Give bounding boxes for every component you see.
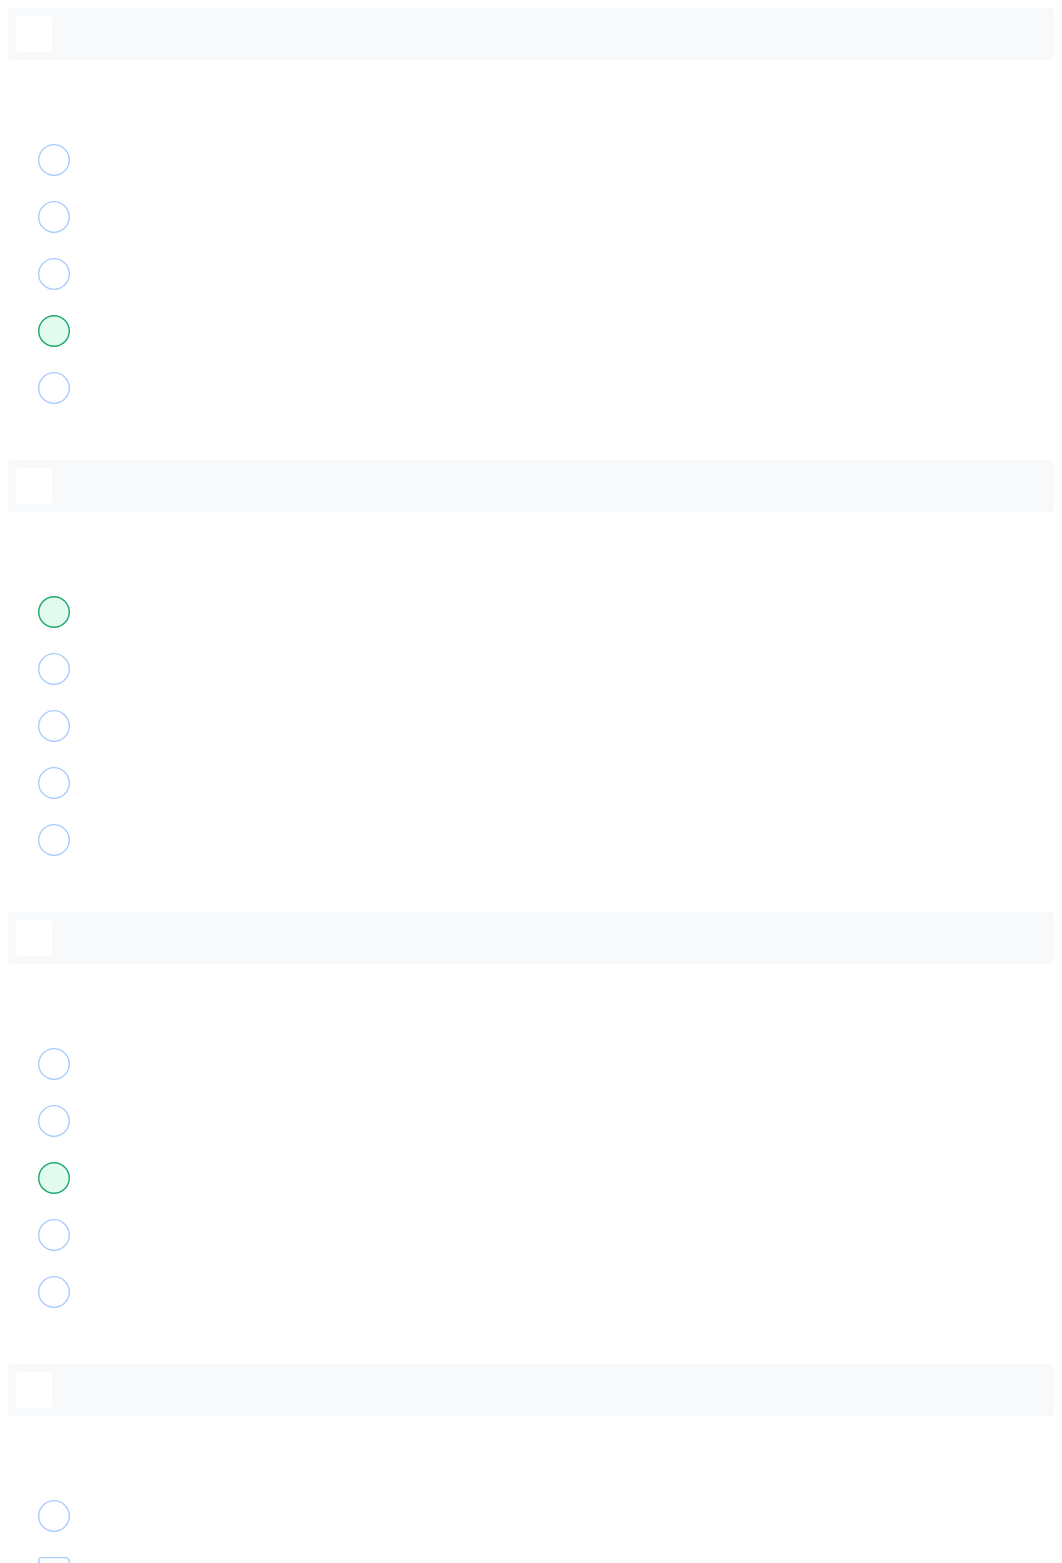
button[interactable]: Question 1 option 2 bbox=[0, 188, 1062, 245]
button[interactable]: Question 3 option 4 bbox=[0, 1206, 1062, 1263]
button[interactable]: Question 4 option 1 bbox=[0, 1487, 1062, 1544]
button[interactable]: Question 1 option 1 bbox=[0, 131, 1062, 188]
button[interactable]: Question 4 option 2 bbox=[0, 1544, 1062, 1563]
button[interactable]: Question 3 option 1 bbox=[0, 1035, 1062, 1092]
button[interactable]: Question 3 option 3 bbox=[0, 1149, 1062, 1206]
button[interactable]: Question 2 option 2 bbox=[0, 640, 1062, 697]
button[interactable]: Question 2 option 3 bbox=[0, 697, 1062, 754]
button[interactable]: Question 2 option 1 bbox=[0, 583, 1062, 640]
button[interactable]: Question 2 option 4 bbox=[0, 754, 1062, 811]
button[interactable]: Question 3 option 2 bbox=[0, 1092, 1062, 1149]
button[interactable]: Question 1 option 4 bbox=[0, 302, 1062, 359]
button[interactable]: Question 1 option 5 bbox=[0, 359, 1062, 416]
button[interactable]: Question 3 option 5 bbox=[0, 1263, 1062, 1320]
button[interactable]: Question 2 option 5 bbox=[0, 811, 1062, 868]
button[interactable]: Question 1 option 3 bbox=[0, 245, 1062, 302]
